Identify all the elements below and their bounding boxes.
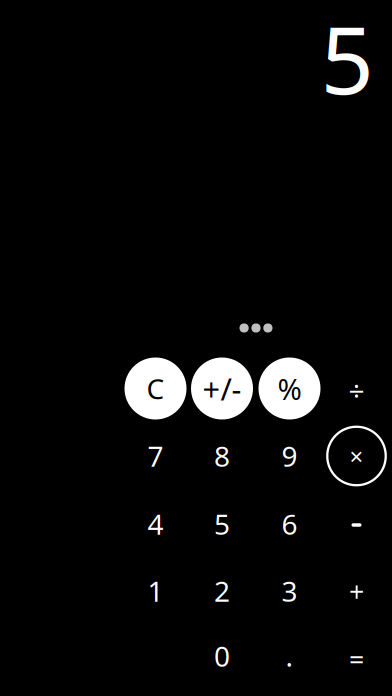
button[interactable]: 4 <box>124 493 186 555</box>
button[interactable]: More <box>230 314 282 342</box>
staticText: . <box>285 637 293 675</box>
button[interactable]: 1 <box>124 560 186 622</box>
button[interactable]: 5 <box>191 493 253 555</box>
staticText: 7 <box>147 437 163 475</box>
staticText: 9 <box>281 437 297 475</box>
button[interactable]: 2 <box>191 560 253 622</box>
staticText: 3 <box>281 572 297 610</box>
button[interactable]: Toggle sign <box>191 357 253 419</box>
staticText: + <box>349 574 364 609</box>
staticText: 5 <box>320 0 373 120</box>
button[interactable]: 8 <box>191 425 253 487</box>
button[interactable]: Multiply <box>327 427 386 485</box>
button[interactable]: Plus <box>325 560 387 622</box>
staticText: = <box>349 641 364 677</box>
button[interactable]: 3 <box>258 560 320 622</box>
staticText: 5 <box>214 505 230 543</box>
staticText: 2 <box>214 572 230 610</box>
staticText: 8 <box>214 437 230 475</box>
staticText: 6 <box>281 505 297 543</box>
button[interactable]: 9 <box>258 425 320 487</box>
staticText: ÷ <box>348 371 364 409</box>
button[interactable]: Divide <box>325 357 387 419</box>
button[interactable]: 7 <box>124 425 186 487</box>
staticText: 1 <box>147 572 163 610</box>
button[interactable]: 6 <box>258 493 320 555</box>
staticText: 4 <box>147 505 163 543</box>
staticText: % <box>277 369 301 408</box>
staticText: C <box>146 370 164 407</box>
button[interactable]: Minus <box>325 493 387 555</box>
button[interactable]: Percent <box>258 357 320 419</box>
button[interactable]: Equals <box>325 625 387 687</box>
staticText: 0 <box>214 637 230 675</box>
staticText: × <box>349 440 363 472</box>
button[interactable]: Clear <box>124 357 186 419</box>
button[interactable]: 0 <box>191 625 253 687</box>
button[interactable]: Decimal point <box>258 625 320 687</box>
staticText: +/- <box>202 368 241 409</box>
